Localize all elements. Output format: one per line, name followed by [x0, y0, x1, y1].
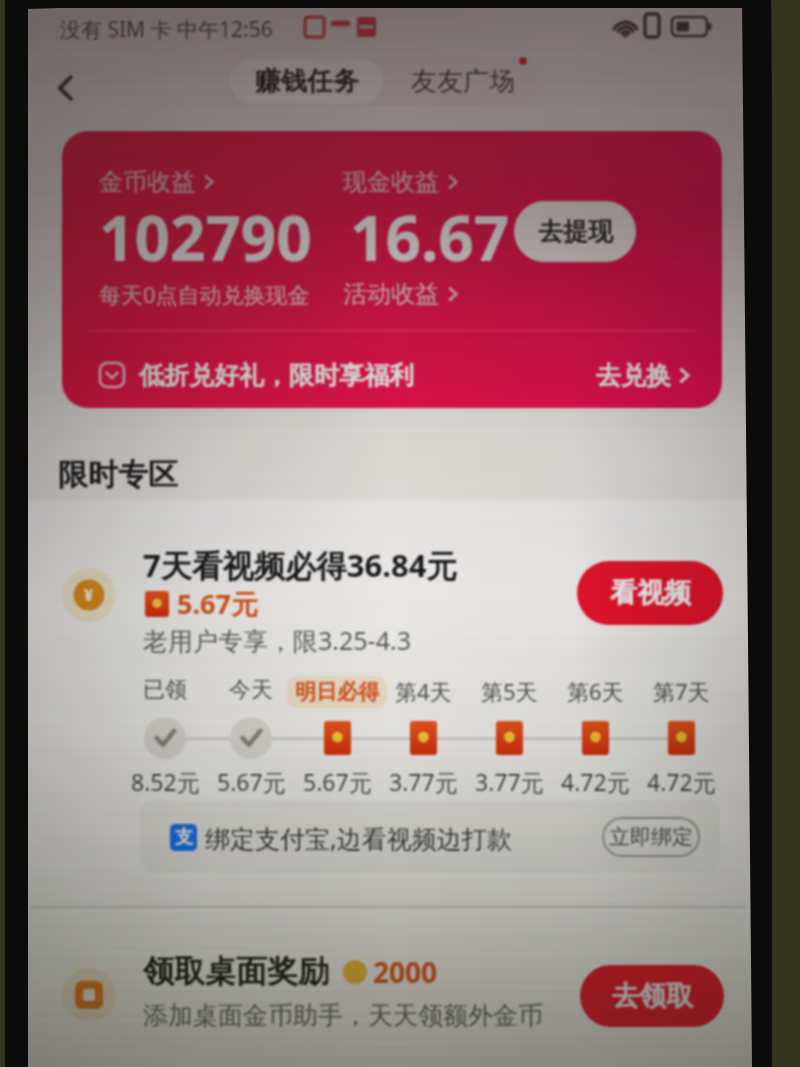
staticText: 添加桌面金币助手，天天领额外金币 — [143, 1000, 543, 1031]
staticText: 友友广场 — [411, 65, 515, 98]
staticText: 活动收益 — [343, 279, 439, 309]
staticText: 3.77元 — [475, 766, 544, 797]
staticText: 去提现 — [538, 216, 613, 247]
button[interactable]: 立即绑定 — [602, 817, 700, 857]
staticText: 领取桌面奖励 — [143, 952, 329, 991]
staticText: 4.72元 — [647, 766, 716, 797]
staticText: 今天 — [229, 676, 273, 704]
staticText: 去领取 — [612, 979, 693, 1013]
staticText: 金币收益 — [99, 167, 195, 197]
button[interactable]: 去领取 — [580, 965, 724, 1027]
staticText: 5.67元 — [217, 766, 286, 797]
staticText: 第7天 — [653, 676, 710, 706]
staticText: 赚钱任务 — [255, 65, 359, 98]
button[interactable]: 活动收益 — [343, 279, 460, 309]
staticText: 16.67 — [350, 195, 510, 279]
button[interactable]: 看视频 — [577, 561, 723, 625]
staticText: 立即绑定 — [609, 824, 693, 850]
staticText: ¥ — [84, 584, 94, 606]
button[interactable]: 现金收益 — [343, 167, 460, 197]
staticText: 8.52元 — [131, 766, 200, 797]
staticText: 4.72元 — [561, 766, 630, 797]
staticText: 限时专区 — [58, 456, 178, 494]
staticText: 没有 SIM 卡 中午12:56 — [60, 15, 273, 44]
button[interactable]: 友友广场 — [389, 58, 536, 104]
staticText: 已领 — [143, 676, 187, 704]
button[interactable] — [140, 800, 720, 872]
staticText: 绑定支付宝,边看视频边打款 — [205, 821, 512, 855]
staticText: 每天0点自动兑换现金 — [99, 279, 310, 309]
staticText: 现金收益 — [343, 167, 439, 197]
staticText: 5.67元 — [303, 766, 372, 797]
staticText: 3.77元 — [389, 766, 458, 797]
button[interactable]: 金币收益 — [99, 167, 216, 197]
staticText: 102790 — [99, 195, 312, 279]
button[interactable]: 赚钱任务 — [230, 58, 383, 104]
staticText: 去兑换 — [596, 360, 671, 391]
staticText: 老用户专享，限3.25-4.3 — [143, 623, 411, 657]
staticText: 5.67元 — [177, 585, 258, 622]
staticText: 2000 — [373, 953, 438, 991]
staticText: 第4天 — [395, 676, 452, 706]
staticText: 第5天 — [481, 676, 538, 706]
staticText: 低折兑好礼，限时享福利 — [139, 360, 414, 391]
staticText: 支 — [175, 826, 193, 849]
button[interactable]: Back — [42, 64, 90, 112]
button[interactable]: 低折兑好礼，限时享福利 — [62, 343, 722, 407]
button[interactable]: 去提现 — [514, 201, 636, 262]
staticText: 7天看视频必得36.84元 — [143, 544, 458, 586]
staticText: 看视频 — [610, 576, 691, 610]
staticText: 明日必得 — [295, 679, 379, 705]
staticText: 第6天 — [567, 676, 624, 706]
